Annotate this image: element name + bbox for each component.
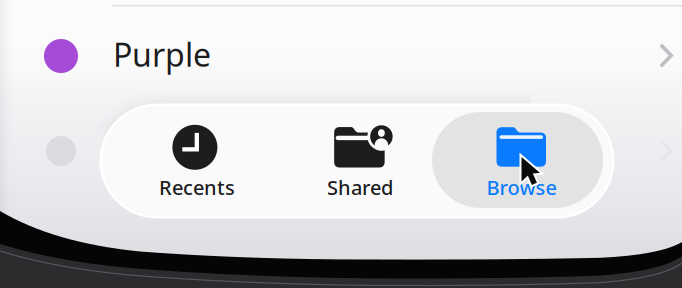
- button[interactable]: Shared: [275, 106, 438, 216]
- staticText: Shared: [327, 174, 393, 201]
- staticText: Browse: [486, 174, 556, 201]
- button[interactable]: Browse: [432, 112, 603, 208]
- staticText: Recents: [159, 174, 235, 201]
- button[interactable]: Recents: [112, 106, 275, 216]
- staticText: Purple: [113, 33, 211, 75]
